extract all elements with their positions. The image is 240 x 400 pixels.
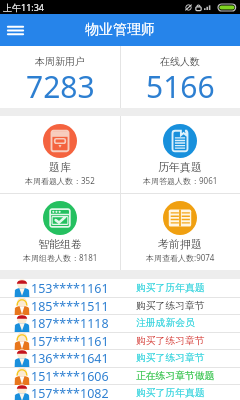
staticText: 153****1161 <box>31 280 109 297</box>
button[interactable]: 题库 <box>0 116 120 193</box>
staticText: 187****1118 <box>31 315 109 332</box>
staticText: 185****1511 <box>31 298 109 315</box>
button[interactable]: 136****1641 <box>0 349 240 367</box>
staticText: 购买了练习章节 <box>136 352 205 364</box>
staticText: 历年真题 <box>158 160 202 174</box>
staticText: 物业管理师 <box>85 21 155 39</box>
button[interactable]: Menu <box>6 21 25 40</box>
button[interactable]: 151****1606 <box>0 367 240 385</box>
button[interactable]: 智能组卷 <box>0 193 120 270</box>
staticText: 本周组卷人数：8181 <box>23 252 98 263</box>
staticText: 本周查看人数:9074 <box>146 252 215 263</box>
staticText: 157****1161 <box>31 333 109 350</box>
staticText: 智能组卷 <box>38 237 82 251</box>
button[interactable]: 187****1118 <box>0 314 240 332</box>
staticText: 151****1606 <box>31 368 109 385</box>
button[interactable]: 185****1511 <box>0 297 240 315</box>
staticText: 正在练习章节做题 <box>136 370 215 382</box>
button[interactable]: 在线人数 <box>120 46 240 108</box>
button[interactable]: 157****1082 <box>0 384 240 400</box>
staticText: 7283 <box>26 66 95 107</box>
staticText: 本周答题人数：9061 <box>143 175 218 186</box>
staticText: 购买了历年真题 <box>136 282 205 294</box>
staticText: 购买了历年真题 <box>136 387 205 399</box>
button[interactable]: 本周新用户 <box>0 46 120 108</box>
staticText: 上午11:34 <box>3 1 45 13</box>
staticText: 在线人数 <box>160 55 200 68</box>
staticText: 题库 <box>49 160 71 174</box>
button[interactable]: 157****1161 <box>0 332 240 350</box>
staticText: 157****1082 <box>31 385 109 400</box>
staticText: 考前押题 <box>158 237 202 251</box>
button[interactable]: 153****1161 <box>0 279 240 297</box>
staticText: 136****1641 <box>31 350 109 367</box>
staticText: 本周看题人数：352 <box>25 175 95 186</box>
button[interactable]: 历年真题 <box>120 116 240 193</box>
staticText: 购买了练习章节 <box>136 335 205 347</box>
button[interactable]: 考前押题 <box>120 193 240 270</box>
staticText: 本周新用户 <box>35 55 85 68</box>
staticText: 5166 <box>146 66 215 107</box>
staticText: 购买了练习章节 <box>136 300 205 312</box>
staticText: 注册成新会员 <box>136 317 195 329</box>
